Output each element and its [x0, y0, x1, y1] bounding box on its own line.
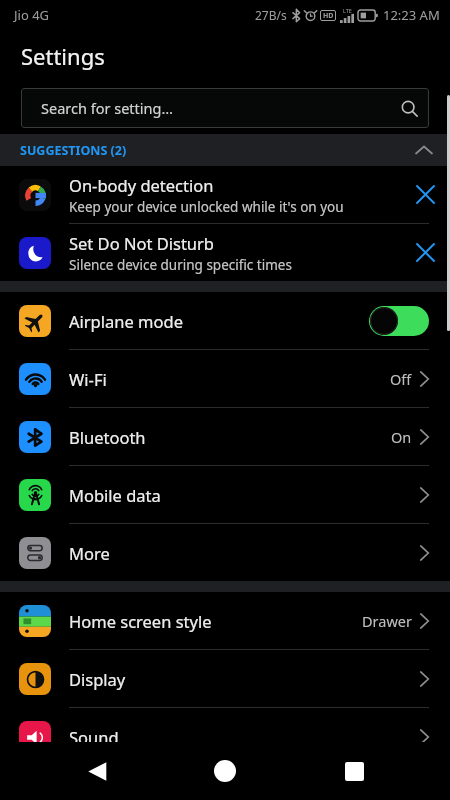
staticText: Mobile data: [69, 484, 420, 506]
staticText: HD: [323, 11, 334, 21]
button[interactable]: Back: [65, 742, 129, 800]
staticText: Search for setting…: [41, 98, 173, 118]
staticText: Settings: [21, 41, 105, 71]
button[interactable]: Display: [0, 650, 450, 707]
staticText: SUGGESTIONS (2): [20, 142, 127, 159]
button[interactable]: Airplane mode: [0, 292, 450, 349]
staticText: Home screen style: [69, 610, 362, 632]
staticText: On: [391, 427, 412, 447]
button[interactable]: Home: [193, 742, 257, 800]
staticText: Sound: [69, 726, 420, 748]
staticText: Drawer: [362, 611, 412, 631]
staticText: Silence device during specific times: [69, 256, 292, 274]
button[interactable]: On-body detection: [0, 166, 450, 223]
staticText: LTE: [343, 7, 352, 14]
staticText: Set Do Not Disturb: [69, 232, 215, 254]
other: Search: [401, 100, 418, 117]
button[interactable]: Bluetooth: [0, 408, 450, 465]
button[interactable]: Sound: [0, 708, 450, 765]
button[interactable]: Dismiss Set Do Not Disturb: [400, 224, 450, 281]
staticText: Airplane mode: [69, 310, 369, 332]
button[interactable]: Wi-Fi: [0, 350, 450, 407]
staticText: On-body detection: [69, 174, 214, 196]
button[interactable]: Search for setting…: [21, 88, 429, 128]
button[interactable]: SUGGESTIONS (2): [0, 134, 450, 166]
button[interactable]: Recent apps: [322, 742, 386, 800]
staticText: Wi-Fi: [69, 368, 390, 390]
staticText: Jio 4G: [14, 6, 50, 24]
button[interactable]: Dismiss On-body detection: [400, 166, 450, 223]
other: Collapse suggestions: [416, 145, 432, 155]
button[interactable]: Airplane mode toggle: [369, 306, 429, 336]
button[interactable]: Home screen style: [0, 592, 450, 649]
button[interactable]: More: [0, 524, 450, 581]
staticText: Display: [69, 668, 420, 690]
staticText: 27B/s: [255, 7, 287, 23]
staticText: 12:23 AM: [383, 6, 440, 24]
staticText: More: [69, 542, 420, 564]
button[interactable]: Mobile data: [0, 466, 450, 523]
staticText: Bluetooth: [69, 426, 391, 448]
staticText: Keep your device unlocked while it's on …: [69, 198, 344, 216]
button[interactable]: Set Do Not Disturb: [0, 224, 450, 281]
staticText: Off: [390, 369, 412, 389]
